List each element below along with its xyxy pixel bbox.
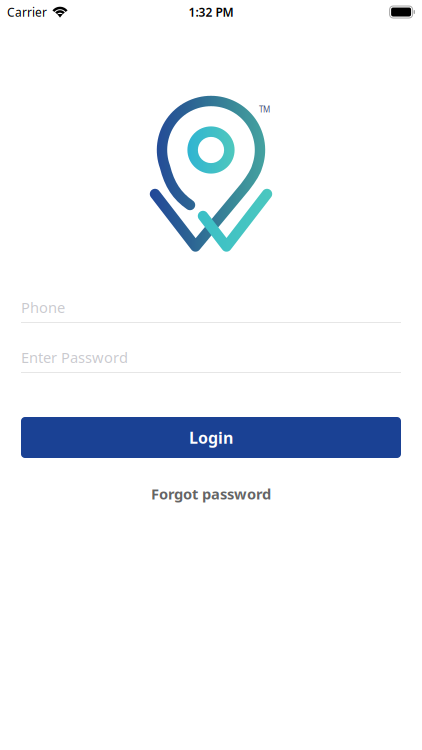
staticText: Enter Password	[21, 347, 128, 367]
staticText: Carrier	[7, 4, 47, 20]
staticText: Login	[189, 427, 233, 448]
button[interactable]: Login	[21, 417, 401, 458]
staticText: Forgot password	[151, 484, 271, 503]
staticText: TM	[259, 104, 270, 115]
button[interactable]: Forgot password	[151, 484, 271, 503]
staticText: Phone	[21, 297, 65, 317]
staticText: 1:32 PM	[188, 4, 233, 20]
